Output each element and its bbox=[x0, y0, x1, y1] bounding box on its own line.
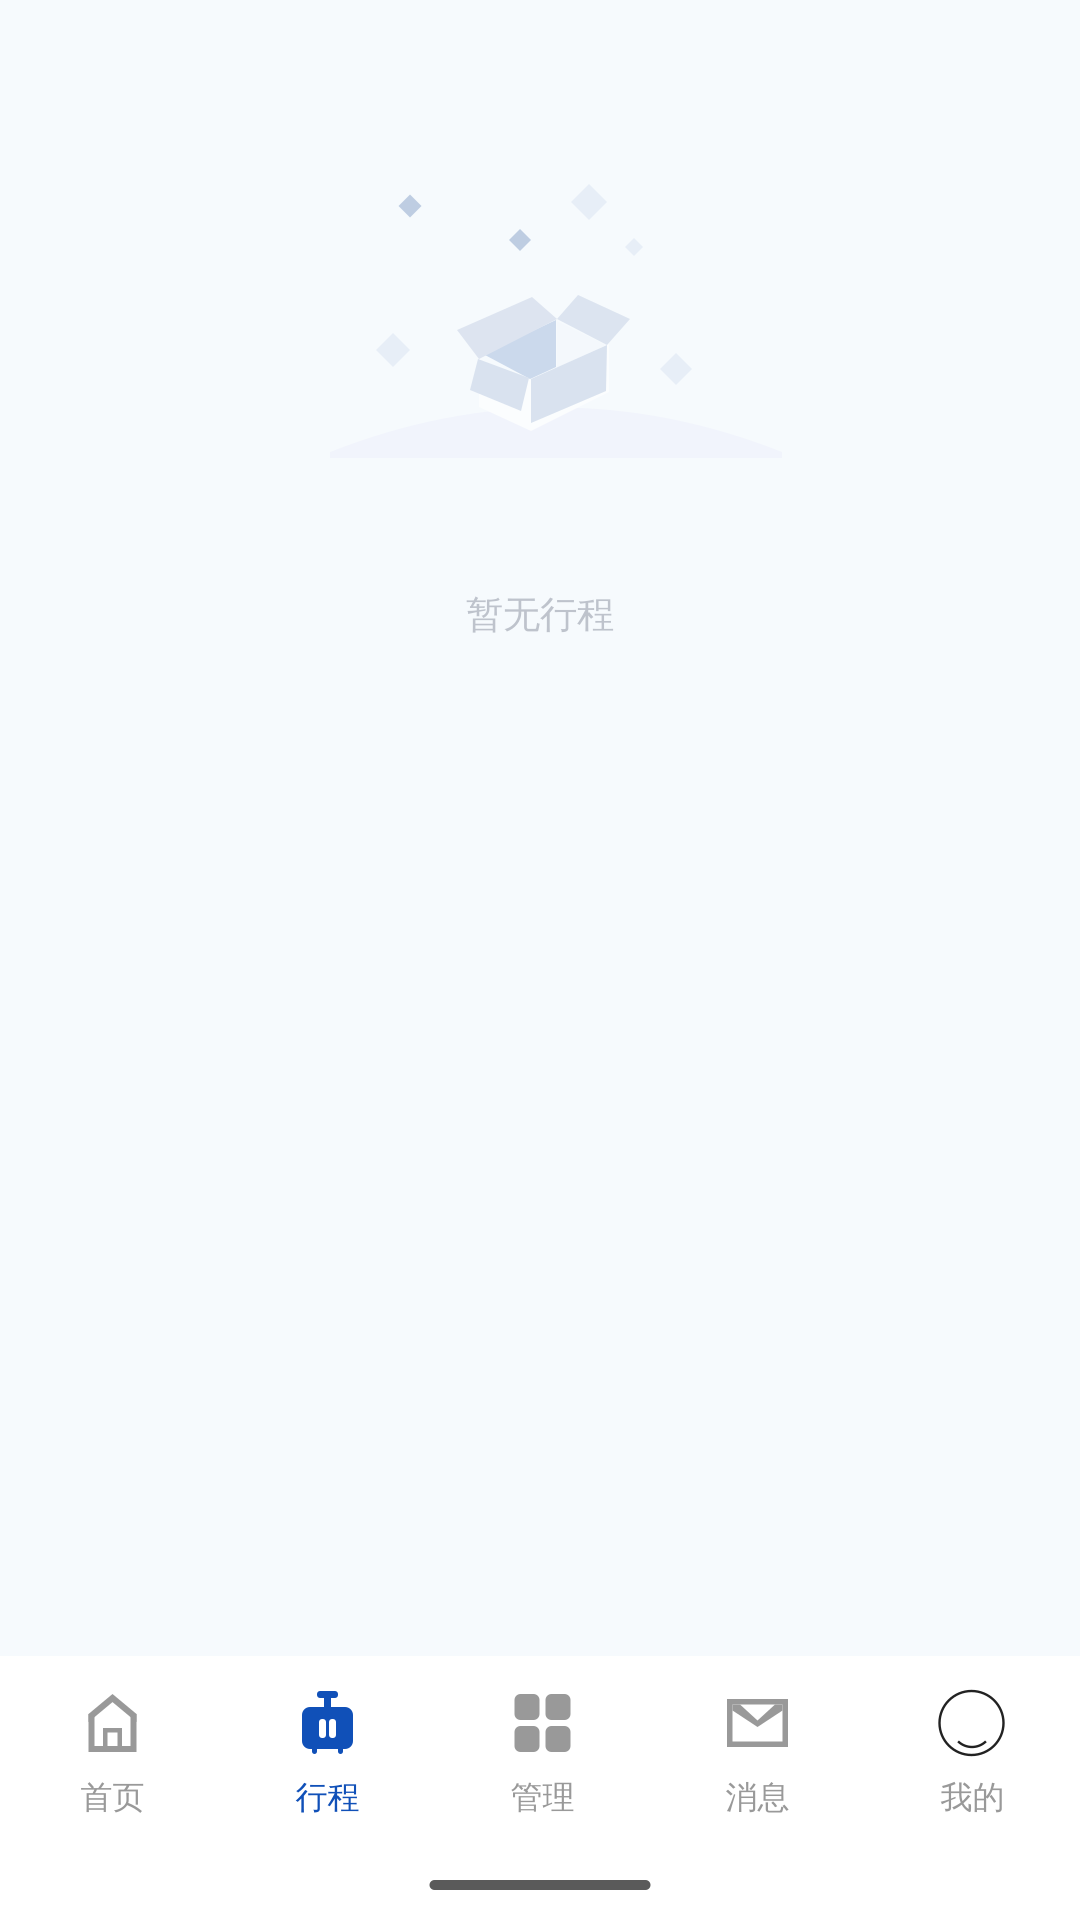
button[interactable]: 管理 bbox=[435, 1656, 650, 1837]
staticText: 消息 bbox=[725, 1778, 789, 1817]
button[interactable]: 我的 bbox=[865, 1656, 1080, 1837]
staticText: 首页 bbox=[80, 1778, 144, 1817]
staticText: 我的 bbox=[940, 1778, 1004, 1817]
staticText: 行程 bbox=[295, 1778, 359, 1817]
staticText: 管理 bbox=[510, 1778, 574, 1817]
button[interactable]: 行程 bbox=[220, 1656, 435, 1837]
button[interactable]: 消息 bbox=[650, 1656, 865, 1837]
button[interactable]: 首页 bbox=[5, 1656, 220, 1837]
staticText: 暂无行程 bbox=[466, 592, 614, 638]
